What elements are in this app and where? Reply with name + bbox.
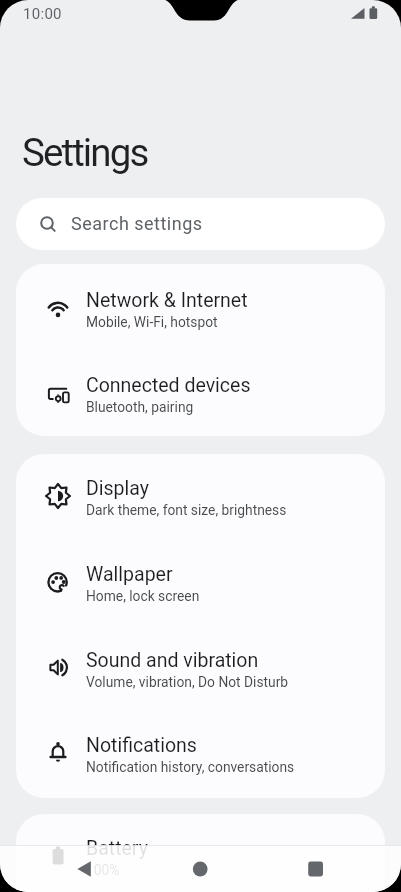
staticText: Notifications <box>86 734 197 757</box>
button[interactable] <box>44 845 124 892</box>
staticText: Volume, vibration, Do Not Disturb <box>86 674 289 690</box>
button[interactable]: Search settings <box>16 198 385 250</box>
button[interactable]: Sound and vibration <box>16 626 385 712</box>
staticText: Mobile, Wi-Fi, hotspot <box>86 314 218 330</box>
button[interactable]: Connected devices <box>16 350 385 436</box>
button[interactable] <box>160 845 240 892</box>
staticText: Battery <box>86 837 148 860</box>
staticText: Settings <box>22 130 148 175</box>
button[interactable]: Battery <box>16 814 385 892</box>
button[interactable]: Network & Internet <box>16 264 385 350</box>
staticText: Home, lock screen <box>86 588 200 604</box>
button[interactable]: Display <box>16 454 385 540</box>
staticText: Connected devices <box>86 374 251 397</box>
staticText: Display <box>86 477 149 500</box>
button[interactable]: Wallpaper <box>16 540 385 626</box>
button[interactable] <box>276 845 356 892</box>
staticText: 100% <box>86 862 120 878</box>
staticText: 10:00 <box>23 5 62 23</box>
staticText: Search settings <box>71 213 203 234</box>
staticText: Network & Internet <box>86 289 248 312</box>
button[interactable]: Notifications <box>16 711 385 797</box>
staticText: Notification history, conversations <box>86 759 295 775</box>
staticText: Dark theme, font size, brightness <box>86 502 287 518</box>
staticText: Wallpaper <box>86 563 173 586</box>
staticText: Bluetooth, pairing <box>86 399 194 415</box>
staticText: Sound and vibration <box>86 649 259 672</box>
